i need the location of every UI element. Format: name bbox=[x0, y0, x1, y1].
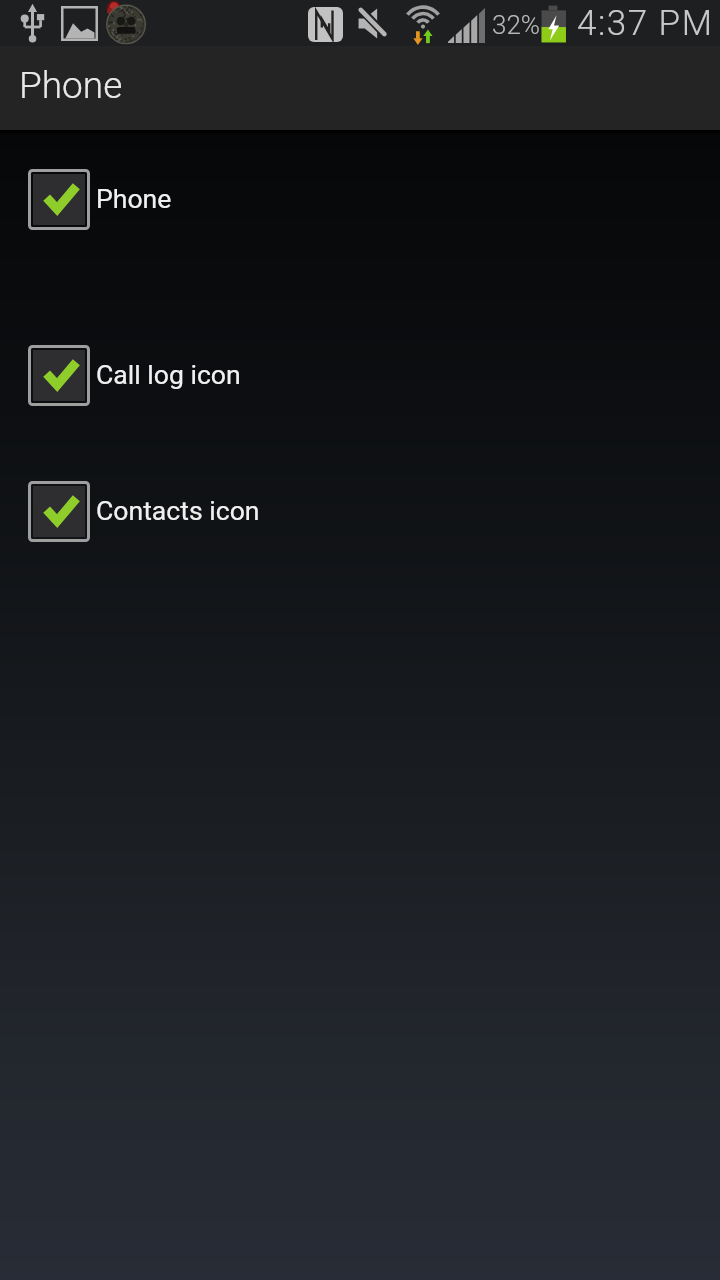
staticText: Call log icon bbox=[96, 359, 241, 390]
staticText: Phone bbox=[19, 64, 123, 107]
staticText: Phone bbox=[96, 183, 172, 214]
button[interactable]: Contacts icon bbox=[0, 481, 720, 542]
other: USB connected bbox=[19, 3, 45, 44]
other: NFC enabled bbox=[308, 7, 343, 42]
other: Wi-Fi connected bbox=[406, 2, 440, 46]
button[interactable]: Phone bbox=[0, 169, 720, 230]
other: App notification bbox=[104, 1, 149, 46]
staticText: 4:37 PM bbox=[577, 3, 714, 44]
other: Battery charging bbox=[541, 4, 567, 44]
other: Sound muted bbox=[358, 8, 385, 39]
staticText: 32% bbox=[492, 10, 541, 40]
button[interactable]: Call log icon bbox=[0, 345, 720, 406]
other: Screenshot captured bbox=[61, 6, 98, 41]
staticText: Contacts icon bbox=[96, 495, 260, 526]
other: Signal strength bbox=[448, 8, 485, 43]
